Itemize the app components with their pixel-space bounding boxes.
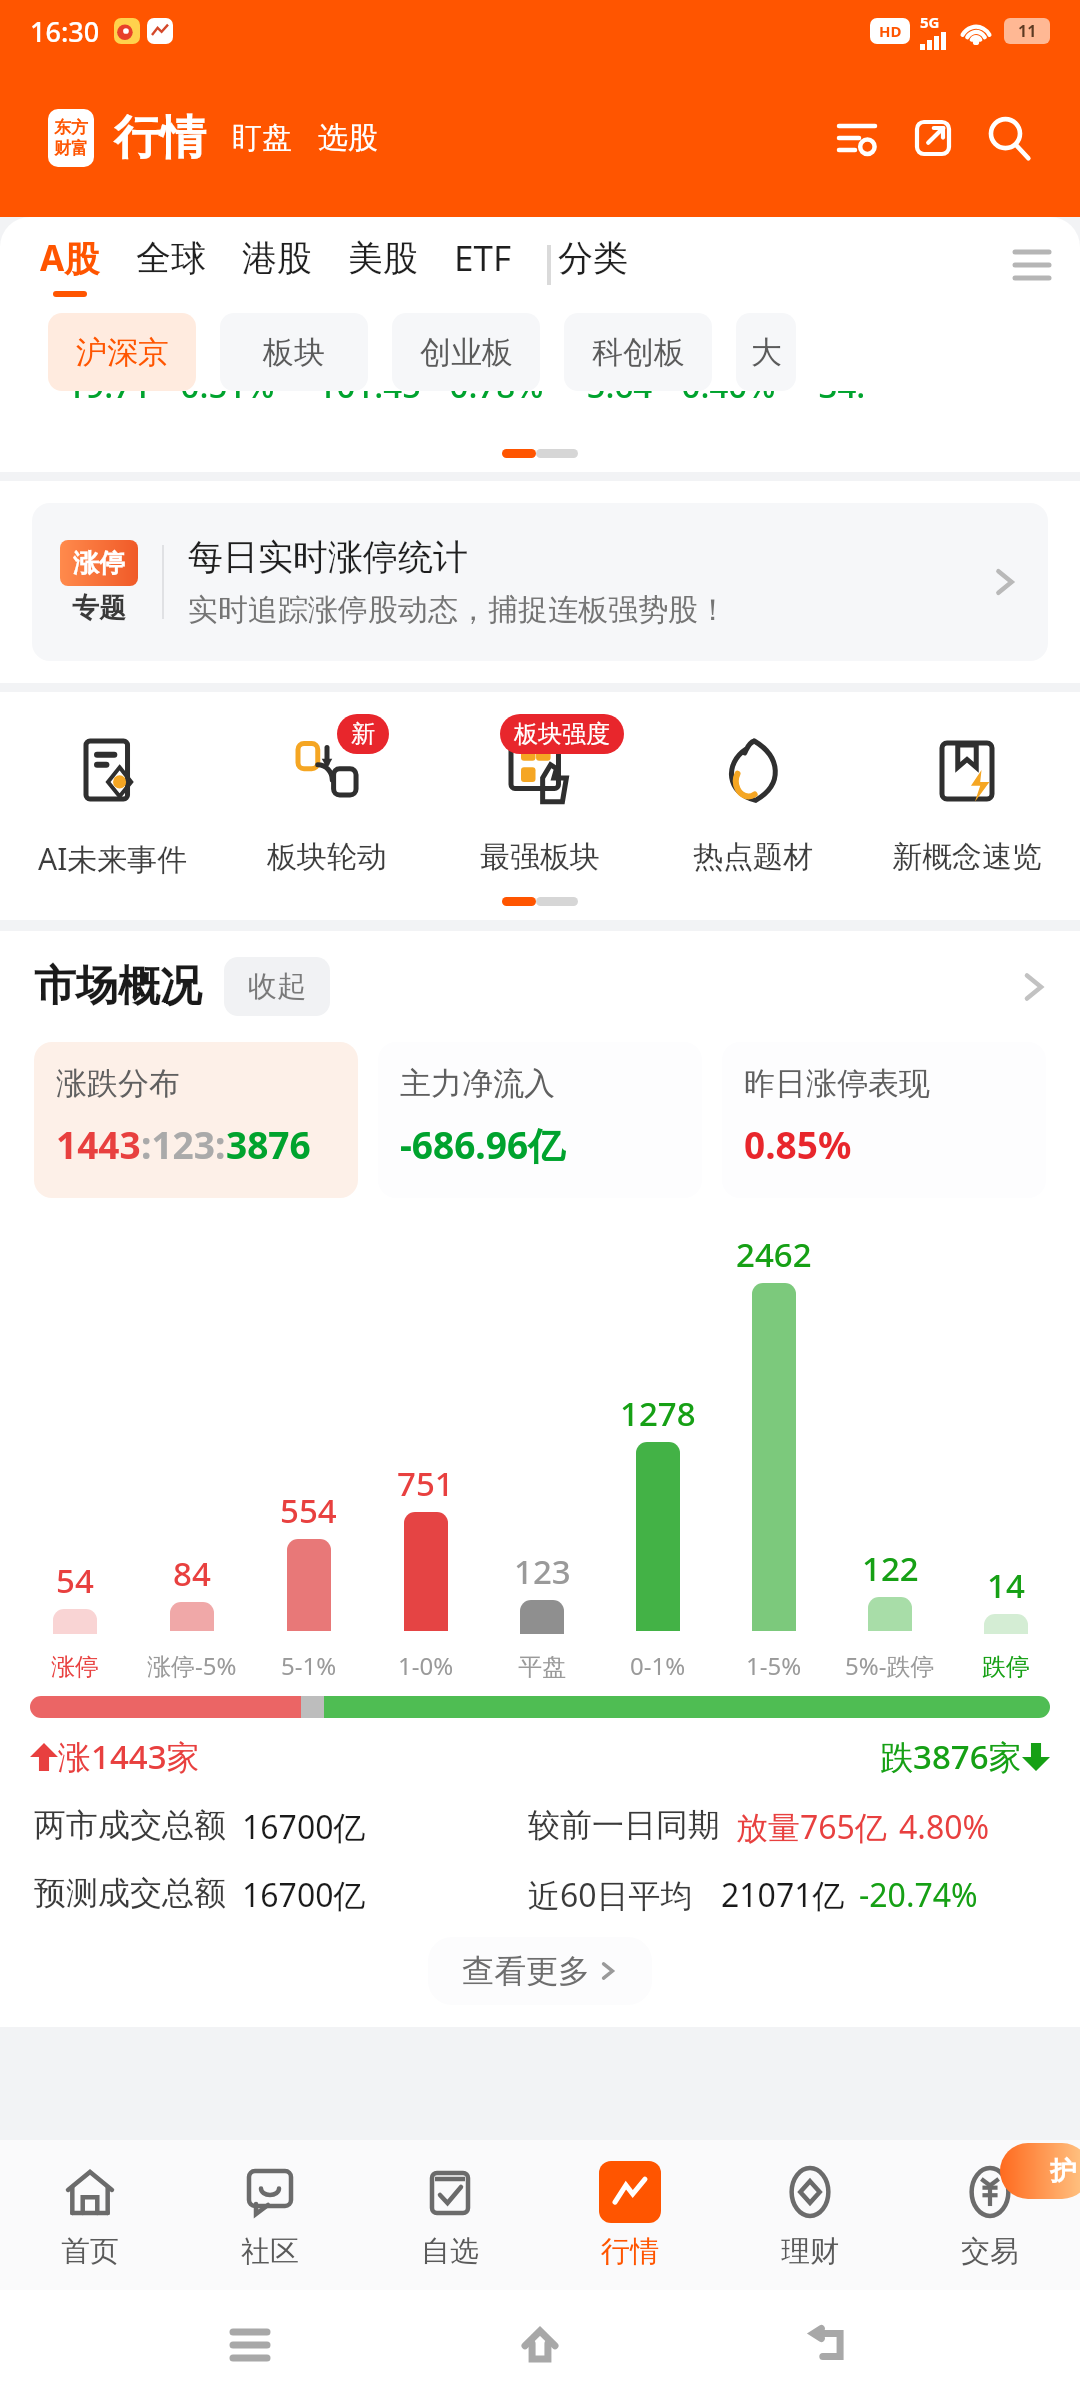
button[interactable]: 行情 <box>114 109 206 167</box>
staticText: 板块强度 <box>514 719 610 749</box>
staticText: 放量765亿 <box>736 1805 887 1849</box>
staticText: -0.51% <box>170 391 275 408</box>
button[interactable]: 板块强度 <box>440 718 640 876</box>
staticText: 热点题材 <box>693 838 813 876</box>
button[interactable]: ETF <box>436 234 530 297</box>
staticText: 跌3876家 <box>880 1734 1022 1779</box>
staticText: 4.80% <box>899 1805 990 1849</box>
button[interactable]: 涨跌分布 <box>34 1042 358 1198</box>
button[interactable]: Share <box>902 107 964 169</box>
button[interactable]: 大 <box>736 313 796 391</box>
staticText: 板块 <box>263 333 325 372</box>
staticText: AI未来事件 <box>38 838 188 879</box>
button[interactable]: 新概念速览 <box>867 718 1067 876</box>
staticText: 16700亿 <box>242 1805 366 1849</box>
staticText: 港股 <box>242 236 312 280</box>
staticText: 1443 <box>56 1119 141 1169</box>
staticText: 查看更多 <box>462 1951 590 1991</box>
staticText: 沪深京 <box>76 333 169 372</box>
staticText: 板块轮动 <box>267 838 387 876</box>
button[interactable]: 选股 <box>318 119 378 157</box>
button[interactable]: 行情 <box>540 2147 720 2284</box>
button[interactable]: 涨停 <box>32 503 1048 661</box>
button[interactable]: A股 <box>22 234 118 297</box>
staticText: 11 <box>1018 20 1037 42</box>
staticText: 美股 <box>348 236 418 280</box>
staticText: -101.45 <box>307 391 421 408</box>
staticText: 财富 <box>54 138 88 159</box>
staticText: -0.40% <box>671 391 776 408</box>
staticText: 实时追踪涨停股动态，捕捉连板强势股！ <box>188 591 728 629</box>
button[interactable]: 美股 <box>330 236 436 295</box>
staticText: 涨停-5% <box>147 1649 237 1682</box>
staticText: 预测成交总额 <box>34 1873 226 1913</box>
staticText: 平盘 <box>518 1652 566 1682</box>
button[interactable]: Recents <box>210 2305 290 2385</box>
button[interactable]: 理财 <box>720 2147 900 2284</box>
staticText: 近60日平均 <box>528 1873 693 1917</box>
button[interactable]: More tabs <box>1004 237 1060 293</box>
button[interactable]: 板块 <box>220 313 368 391</box>
staticText: 1-5% <box>746 1649 802 1682</box>
button[interactable]: AI未来事件 <box>13 718 213 879</box>
button[interactable]: 主力净流入 <box>378 1042 702 1198</box>
button[interactable]: 社区 <box>180 2147 360 2284</box>
staticText: HD <box>879 21 902 41</box>
staticText: 16700亿 <box>242 1873 366 1917</box>
staticText: 5-1% <box>281 1649 337 1682</box>
staticText: -5.64 <box>576 391 653 408</box>
button[interactable]: 查看更多 <box>428 1937 652 2005</box>
staticText: 较前一日同期 <box>528 1805 720 1845</box>
button[interactable]: 自选 <box>360 2147 540 2284</box>
staticText: 新概念速览 <box>892 838 1042 876</box>
staticText: 涨1443家 <box>58 1734 200 1779</box>
button[interactable]: Home <box>500 2305 580 2385</box>
staticText: 行情 <box>601 2233 659 2270</box>
button[interactable]: 市场概况 <box>34 957 1050 1016</box>
button[interactable]: 交易 <box>900 2147 1080 2284</box>
button[interactable]: Filter settings <box>826 107 888 169</box>
staticText: 专题 <box>72 591 126 625</box>
button[interactable]: Search <box>978 107 1040 169</box>
staticText: A股 <box>40 234 100 282</box>
staticText: 收起 <box>248 968 306 1005</box>
staticText: 主力净流入 <box>400 1064 555 1103</box>
staticText: 两市成交总额 <box>34 1805 226 1845</box>
staticText: 社区 <box>241 2233 299 2270</box>
button[interactable]: 创业板 <box>392 313 540 391</box>
button[interactable]: 昨日涨停表现 <box>722 1042 1046 1198</box>
staticText: 涨跌分布 <box>56 1064 180 1103</box>
staticText: 昨日涨停表现 <box>744 1064 930 1103</box>
staticText: -34. <box>808 391 866 408</box>
staticText: ETF <box>454 234 512 282</box>
staticText: 分类 <box>558 236 628 280</box>
button[interactable]: 首页 <box>0 2147 180 2284</box>
staticText: 751 <box>397 1461 454 1506</box>
button[interactable]: 新 <box>227 718 427 876</box>
button[interactable]: 全球 <box>118 236 224 295</box>
button[interactable]: 港股 <box>224 236 330 295</box>
staticText: 跌停 <box>982 1652 1030 1682</box>
staticText: 3876 <box>226 1119 311 1169</box>
button[interactable]: 盯盘 <box>232 119 292 157</box>
staticText: -20.74% <box>859 1873 978 1917</box>
staticText: 首页 <box>61 2233 119 2270</box>
button[interactable]: 热点题材 <box>653 718 853 876</box>
staticText: 0.85% <box>744 1119 852 1169</box>
staticText: 5G <box>920 12 940 32</box>
staticText: 新 <box>351 719 375 749</box>
button[interactable]: 沪深京 <box>48 313 196 391</box>
staticText: 市场概况 <box>34 960 202 1013</box>
button[interactable]: 科创板 <box>564 313 712 391</box>
button[interactable]: Back <box>790 2305 870 2385</box>
staticText: 全球 <box>136 236 206 280</box>
staticText: 涨停 <box>73 547 125 580</box>
staticText: 554 <box>280 1488 337 1533</box>
staticText: 0-1% <box>630 1649 686 1682</box>
staticText: 14 <box>987 1563 1025 1608</box>
staticText: 122 <box>862 1546 919 1591</box>
staticText: 东方 <box>54 117 88 138</box>
staticText: 护 <box>1050 2155 1076 2188</box>
staticText: 创业板 <box>420 333 513 372</box>
button[interactable]: 分类 <box>558 236 628 295</box>
